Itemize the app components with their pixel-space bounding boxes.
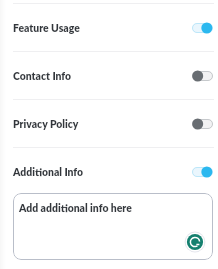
button[interactable]: Feature Usage	[0, 4, 218, 51]
staticText: Add additional info here	[19, 202, 132, 214]
staticText: Feature Usage	[13, 22, 80, 34]
button[interactable]: Add additional info here	[13, 193, 213, 260]
button[interactable]: Toggle off	[192, 118, 213, 130]
button[interactable]: Grammarly	[184, 231, 206, 253]
button[interactable]: Toggle on	[192, 22, 213, 34]
staticText: Privacy Policy	[13, 118, 79, 130]
staticText: Additional Info	[13, 166, 84, 178]
button[interactable]: Privacy Policy	[0, 100, 218, 147]
button[interactable]: Toggle off	[192, 70, 213, 82]
button[interactable]: Additional Info	[0, 148, 218, 195]
staticText: Contact Info	[13, 70, 72, 82]
button[interactable]: Toggle on	[192, 166, 213, 178]
button[interactable]: Contact Info	[0, 52, 218, 99]
